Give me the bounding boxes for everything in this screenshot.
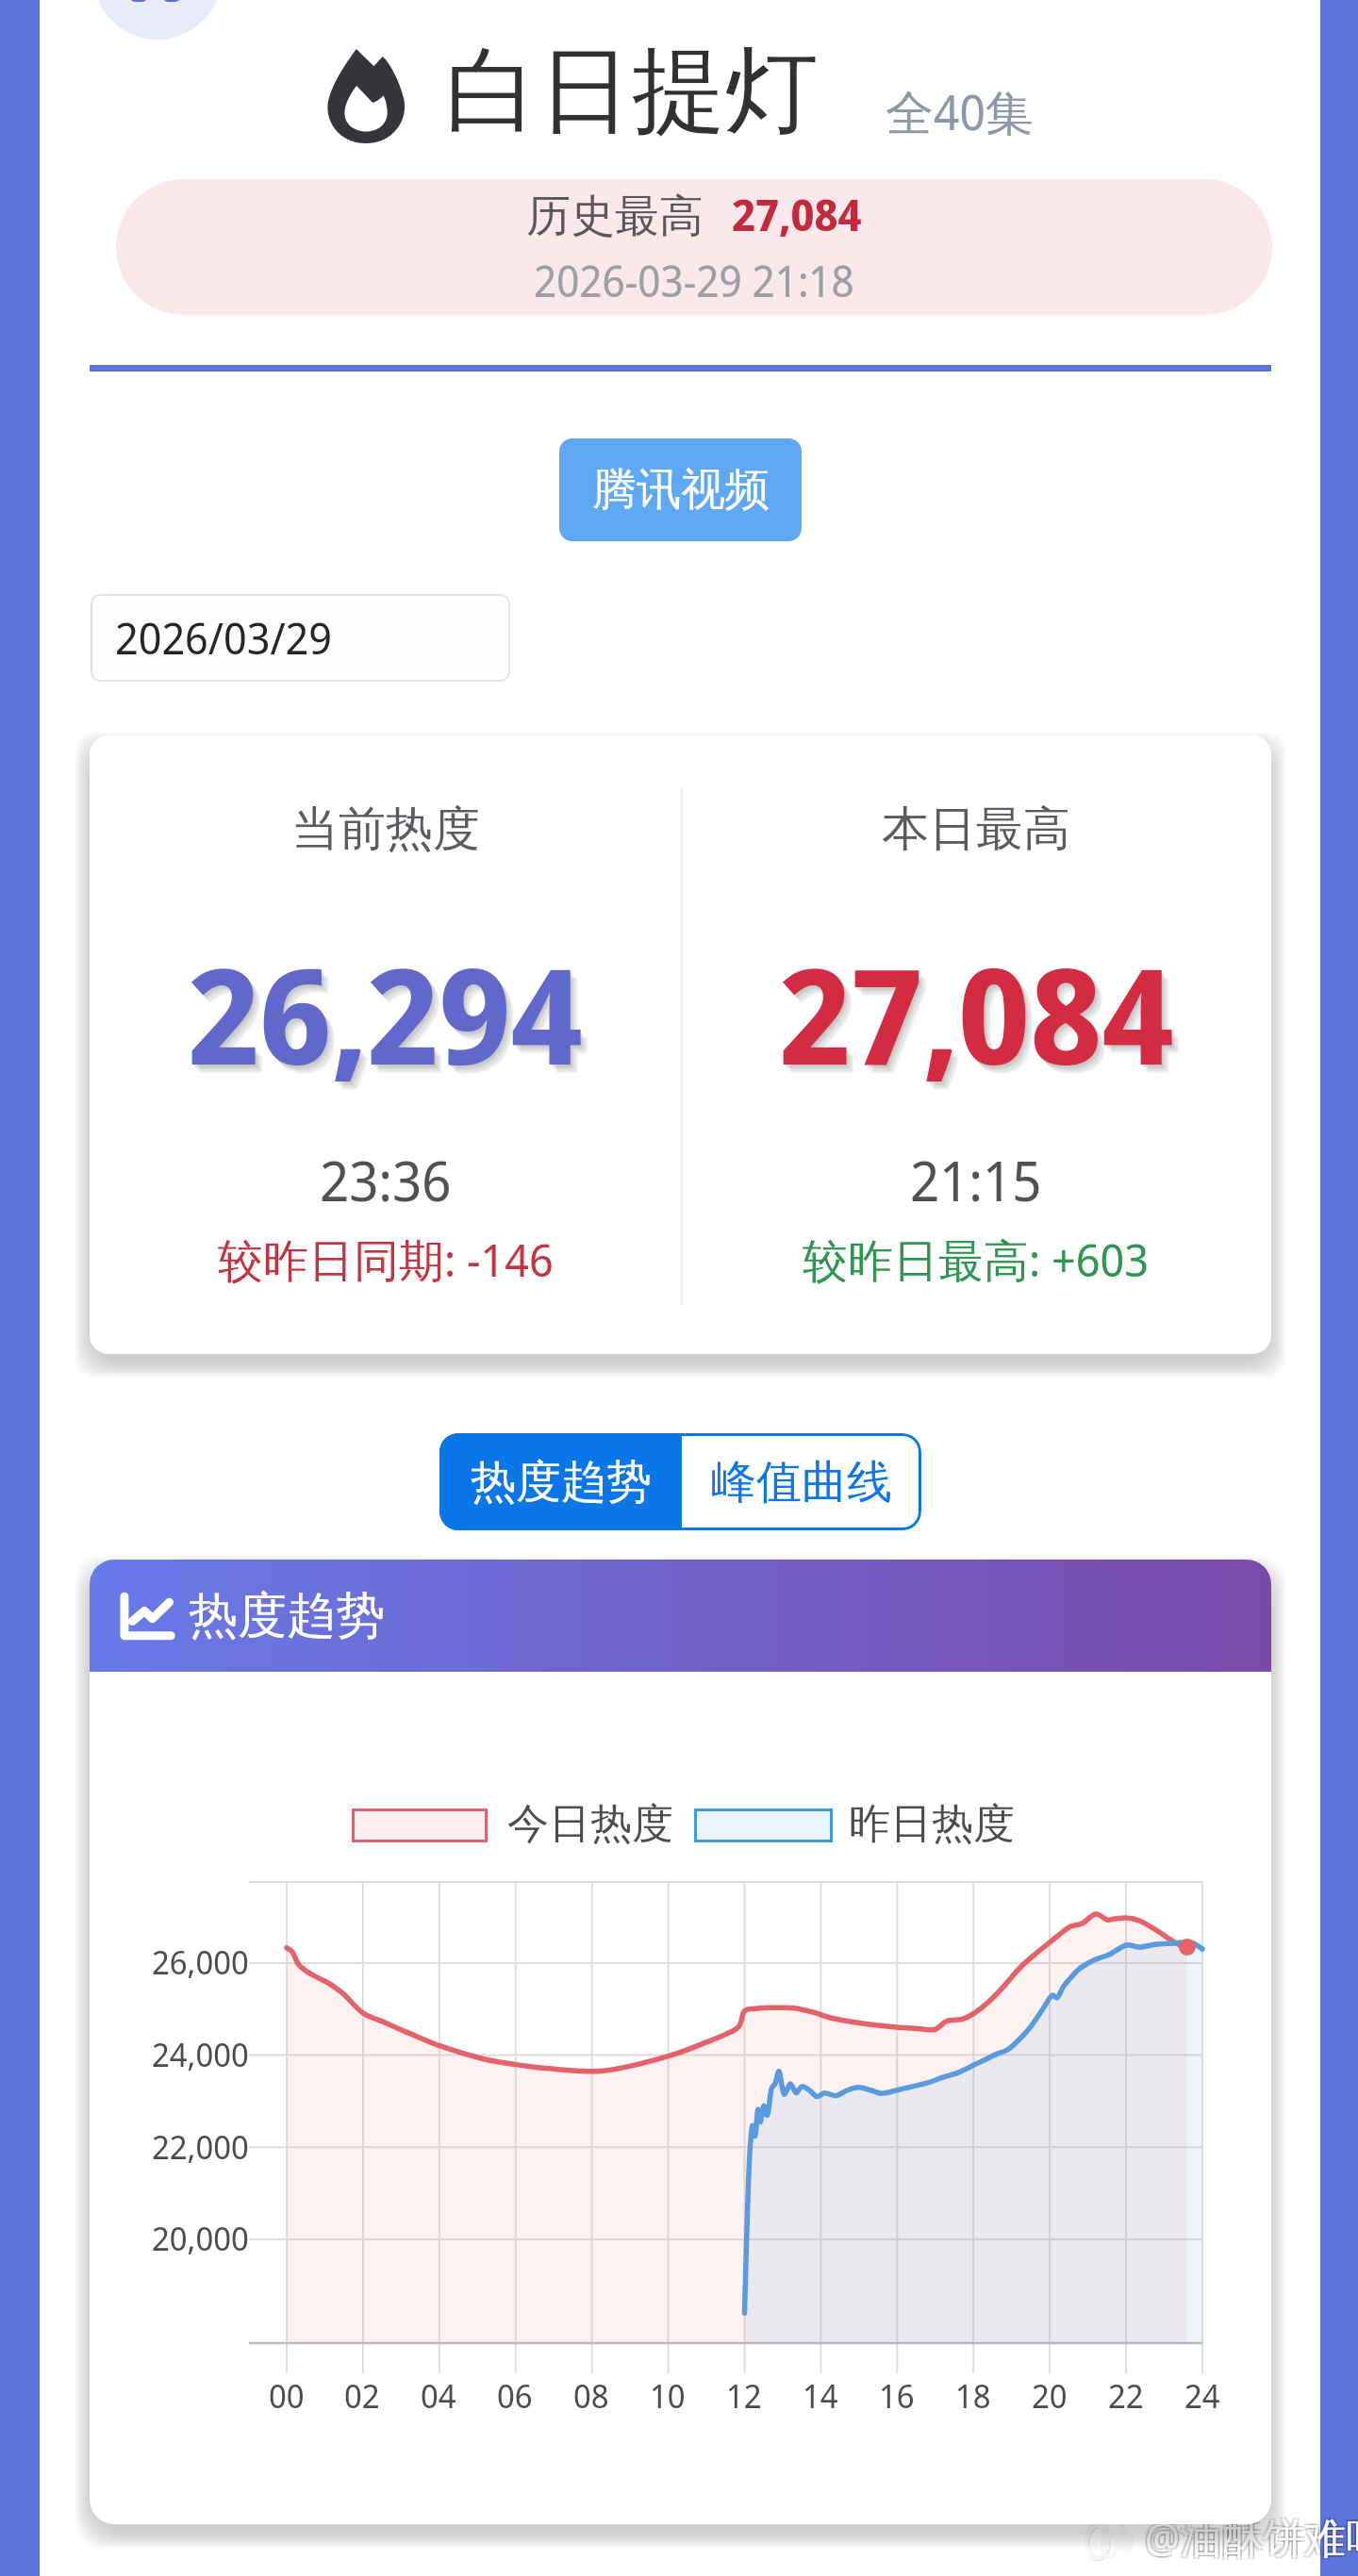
- staticText: 22: [1108, 2373, 1144, 2419]
- staticText: 26,294: [189, 924, 584, 1104]
- staticText: 00: [269, 2373, 305, 2419]
- staticText: 27,084: [785, 930, 1180, 1110]
- staticText: @油酥饼难吃: [1143, 2506, 1358, 2563]
- staticText: 18: [955, 2373, 991, 2419]
- staticText: @油酥饼难吃: [1145, 2508, 1358, 2565]
- button[interactable]: 峰值曲线: [682, 1433, 921, 1530]
- staticText: 热度趋势: [471, 1454, 652, 1511]
- staticText: @油酥饼难吃: [1147, 2510, 1358, 2567]
- staticText: 今日热度: [507, 1798, 673, 1850]
- staticText: 24: [1184, 2373, 1220, 2419]
- staticText: 20,000: [152, 2216, 249, 2261]
- staticText: 26,294: [195, 932, 590, 1112]
- staticText: 27,084: [732, 185, 862, 244]
- staticText: 较昨日最高: +603: [803, 1229, 1150, 1291]
- staticText: @油酥饼难吃: [1147, 2506, 1358, 2563]
- staticText: 26,294: [190, 926, 585, 1106]
- staticText: 27,084: [779, 923, 1174, 1103]
- staticText: 26,294: [190, 927, 586, 1107]
- staticText: 白日提灯: [445, 33, 819, 151]
- staticText: 2026-03-29 21:18: [534, 252, 854, 309]
- staticText: 26,294: [191, 928, 587, 1108]
- staticText: 06: [497, 2373, 533, 2419]
- staticText: 14: [803, 2373, 838, 2419]
- button[interactable]: 历史最高: [116, 179, 1272, 315]
- staticText: 峰值曲线: [711, 1454, 892, 1511]
- staticText: 04: [421, 2373, 456, 2419]
- staticText: 较昨日同期: -146: [218, 1229, 554, 1291]
- button[interactable]: 2026/03/29: [91, 594, 510, 682]
- other: 微博: [1086, 2512, 1139, 2561]
- staticText: 10: [650, 2373, 686, 2419]
- staticText: 昨日热度: [849, 1798, 1015, 1850]
- staticText: 26,294: [188, 923, 583, 1103]
- staticText: 27,084: [787, 932, 1182, 1112]
- staticText: 16: [879, 2373, 915, 2419]
- staticText: 20: [1032, 2373, 1068, 2419]
- button[interactable]: 当前热度: [90, 735, 681, 1354]
- staticText: 27,084: [783, 928, 1178, 1108]
- staticText: 26,000: [152, 1940, 249, 1985]
- button[interactable]: 热度趋势: [439, 1433, 682, 1530]
- staticText: 27,084: [781, 926, 1176, 1106]
- other: 趋势图: [121, 1594, 174, 1638]
- staticText: 08: [573, 2373, 609, 2419]
- button[interactable]: 腾讯视频: [559, 438, 802, 541]
- button[interactable]: 热度: [324, 33, 819, 151]
- staticText: 当前热度: [291, 800, 480, 859]
- staticText: 腾讯视频: [592, 462, 770, 518]
- staticText: 22,000: [152, 2124, 249, 2170]
- staticText: 历史最高: [526, 189, 704, 244]
- staticText: 02: [344, 2373, 380, 2419]
- staticText: 21:15: [910, 1143, 1042, 1217]
- staticText: @油酥饼难吃: [1143, 2510, 1358, 2567]
- staticText: 本日最高: [882, 800, 1070, 859]
- staticText: 27,084: [780, 924, 1175, 1104]
- staticText: 2026/03/29: [115, 608, 332, 668]
- staticText: 12: [726, 2373, 762, 2419]
- staticText: 27,084: [786, 931, 1181, 1111]
- staticText: 26,294: [194, 931, 589, 1111]
- staticText: 24,000: [152, 2032, 249, 2077]
- staticText: 26,294: [193, 930, 588, 1110]
- button[interactable]: 趋势图: [90, 1560, 1271, 1672]
- button[interactable]: 本日最高: [681, 735, 1271, 1354]
- staticText: 全40集: [886, 78, 1034, 144]
- staticText: 热度趋势: [189, 1585, 385, 1647]
- other: 热度: [324, 49, 407, 143]
- staticText: 27,084: [782, 927, 1177, 1107]
- staticText: 23:36: [320, 1143, 452, 1217]
